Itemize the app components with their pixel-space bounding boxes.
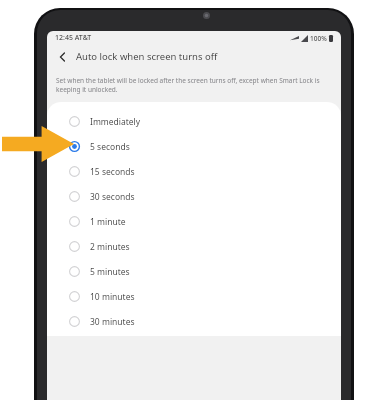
staticText: Auto lock when screen turns off bbox=[76, 50, 218, 63]
staticText: 100% bbox=[310, 34, 327, 43]
staticText: 12:45 AT&T bbox=[55, 33, 92, 43]
staticText: 15 seconds bbox=[90, 166, 135, 178]
staticText: 30 seconds bbox=[90, 191, 135, 203]
button[interactable]: Back bbox=[54, 48, 71, 65]
button[interactable]: 10 minutes bbox=[47, 284, 341, 309]
other: Pointer arrow bbox=[2, 126, 74, 162]
button[interactable]: 30 minutes bbox=[47, 309, 341, 334]
button[interactable]: 15 seconds bbox=[47, 159, 341, 184]
staticText: 1 minute bbox=[90, 216, 126, 228]
button[interactable]: 1 minute bbox=[47, 209, 341, 234]
staticText: 5 seconds bbox=[90, 141, 130, 153]
staticText: 5 minutes bbox=[90, 266, 130, 278]
button[interactable]: 2 minutes bbox=[47, 234, 341, 259]
staticText: Immediately bbox=[90, 116, 141, 128]
button[interactable]: 30 seconds bbox=[47, 184, 341, 209]
staticText: 30 minutes bbox=[90, 316, 135, 328]
button[interactable]: Immediately bbox=[47, 109, 341, 134]
button[interactable]: 5 seconds bbox=[47, 134, 341, 159]
staticText: 10 minutes bbox=[90, 291, 135, 303]
button[interactable]: 5 minutes bbox=[47, 259, 341, 284]
staticText: 2 minutes bbox=[90, 241, 130, 253]
staticText: Set when the tablet will be locked after… bbox=[56, 76, 331, 94]
